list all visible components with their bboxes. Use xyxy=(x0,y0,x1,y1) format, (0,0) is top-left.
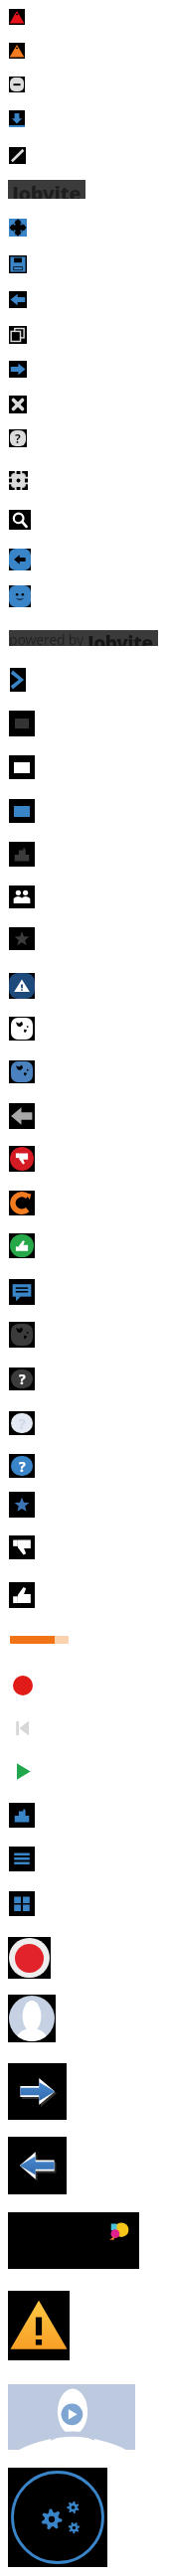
staticText: ? xyxy=(19,1457,26,1476)
button[interactable]: Network xyxy=(9,1322,35,1348)
button[interactable]: Video xyxy=(9,711,35,736)
button[interactable]: Question xyxy=(9,1411,35,1435)
button[interactable]: Caution xyxy=(9,43,25,59)
button[interactable]: Globe xyxy=(9,1017,35,1041)
button[interactable]: Warning xyxy=(8,2291,70,2360)
button[interactable]: Alert xyxy=(9,973,35,999)
staticText: ? xyxy=(15,430,21,446)
button[interactable]: Copy xyxy=(9,326,27,344)
button[interactable]: Next xyxy=(10,668,26,692)
button[interactable]: Next xyxy=(8,2063,67,2120)
button[interactable]: List xyxy=(9,1847,35,1871)
button[interactable]: Dislike xyxy=(9,1146,35,1172)
button[interactable]: Play xyxy=(13,1760,33,1783)
button[interactable]: Refresh xyxy=(9,1191,35,1215)
button[interactable]: Info xyxy=(9,1368,35,1390)
button[interactable]: Help xyxy=(9,1454,35,1478)
button[interactable]: Like xyxy=(9,1233,35,1258)
button[interactable]: Record xyxy=(8,1937,51,1979)
button[interactable]: Download xyxy=(9,110,25,127)
button[interactable]: Expand xyxy=(9,471,28,490)
button[interactable]: Web xyxy=(9,1060,35,1083)
button[interactable]: Save xyxy=(9,255,27,273)
staticText: powered by xyxy=(9,630,87,646)
staticText: ? xyxy=(19,1369,26,1388)
button[interactable] xyxy=(10,1636,69,1644)
button[interactable]: Company xyxy=(9,842,35,867)
button[interactable]: Profile xyxy=(9,585,31,607)
button[interactable]: Forward xyxy=(9,361,27,378)
button[interactable]: Record xyxy=(13,1676,33,1695)
button[interactable]: Resize xyxy=(9,147,26,164)
button[interactable]: Window xyxy=(9,755,35,779)
button[interactable]: Favorite xyxy=(9,927,35,950)
staticText: ? xyxy=(19,1414,26,1433)
button[interactable]: Back xyxy=(9,1103,35,1129)
button[interactable]: Screen xyxy=(9,799,35,823)
button[interactable]: Comment xyxy=(9,1279,35,1305)
button[interactable]: Avatar xyxy=(8,1995,56,2042)
button[interactable]: Back xyxy=(9,291,27,308)
button[interactable]: Jobvite xyxy=(8,180,85,199)
button[interactable]: Office xyxy=(9,1803,35,1828)
button[interactable]: Help xyxy=(9,429,27,447)
staticText: Jobvite xyxy=(12,180,82,199)
button[interactable]: Previous xyxy=(9,549,31,570)
staticText: Jobvite xyxy=(87,630,153,646)
button[interactable]: powered by xyxy=(9,630,158,646)
button[interactable]: Thumbs down xyxy=(9,1535,35,1559)
button[interactable]: Move xyxy=(9,219,27,237)
button[interactable]: Block xyxy=(9,77,25,92)
button[interactable]: Settings xyxy=(8,2468,107,2567)
button[interactable]: Close xyxy=(9,396,27,413)
button[interactable]: Previous xyxy=(8,2137,67,2194)
button[interactable]: Star xyxy=(9,1492,35,1518)
button[interactable]: Brand xyxy=(8,2212,139,2269)
button[interactable]: Play video xyxy=(8,2384,135,2450)
button[interactable]: Grid xyxy=(9,1891,35,1916)
button[interactable]: Warning xyxy=(9,9,25,25)
button[interactable]: Previous xyxy=(13,1717,33,1739)
button[interactable]: People xyxy=(9,885,35,908)
button[interactable]: Thumbs up xyxy=(9,1582,35,1608)
button[interactable]: Search xyxy=(9,510,31,530)
